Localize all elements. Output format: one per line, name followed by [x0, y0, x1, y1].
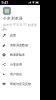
staticText: 设置	[10, 34, 16, 37]
button[interactable]: 用户协议	[0, 69, 40, 79]
staticText: 设置	[1, 28, 7, 32]
staticText: 检查新版本	[10, 53, 25, 57]
staticText: 版本号 V16.8.31 检查更新	[3, 23, 37, 31]
button[interactable]: 分享应用	[0, 60, 40, 69]
staticText: 用户协议	[10, 72, 22, 76]
button[interactable]: 设置	[0, 31, 40, 40]
staticText: 小米浏览器	[3, 16, 23, 20]
staticText: 分享应用	[10, 63, 22, 66]
button[interactable]: 清除浏览数据	[0, 40, 40, 50]
button[interactable]: 帮助与意见反馈	[0, 79, 40, 89]
button[interactable]: 检查新版本	[0, 50, 40, 60]
staticText: 9:41	[1, 0, 8, 5]
staticText: 清除浏览数据	[10, 43, 28, 47]
staticText: 帮助与意见反馈	[10, 82, 31, 86]
